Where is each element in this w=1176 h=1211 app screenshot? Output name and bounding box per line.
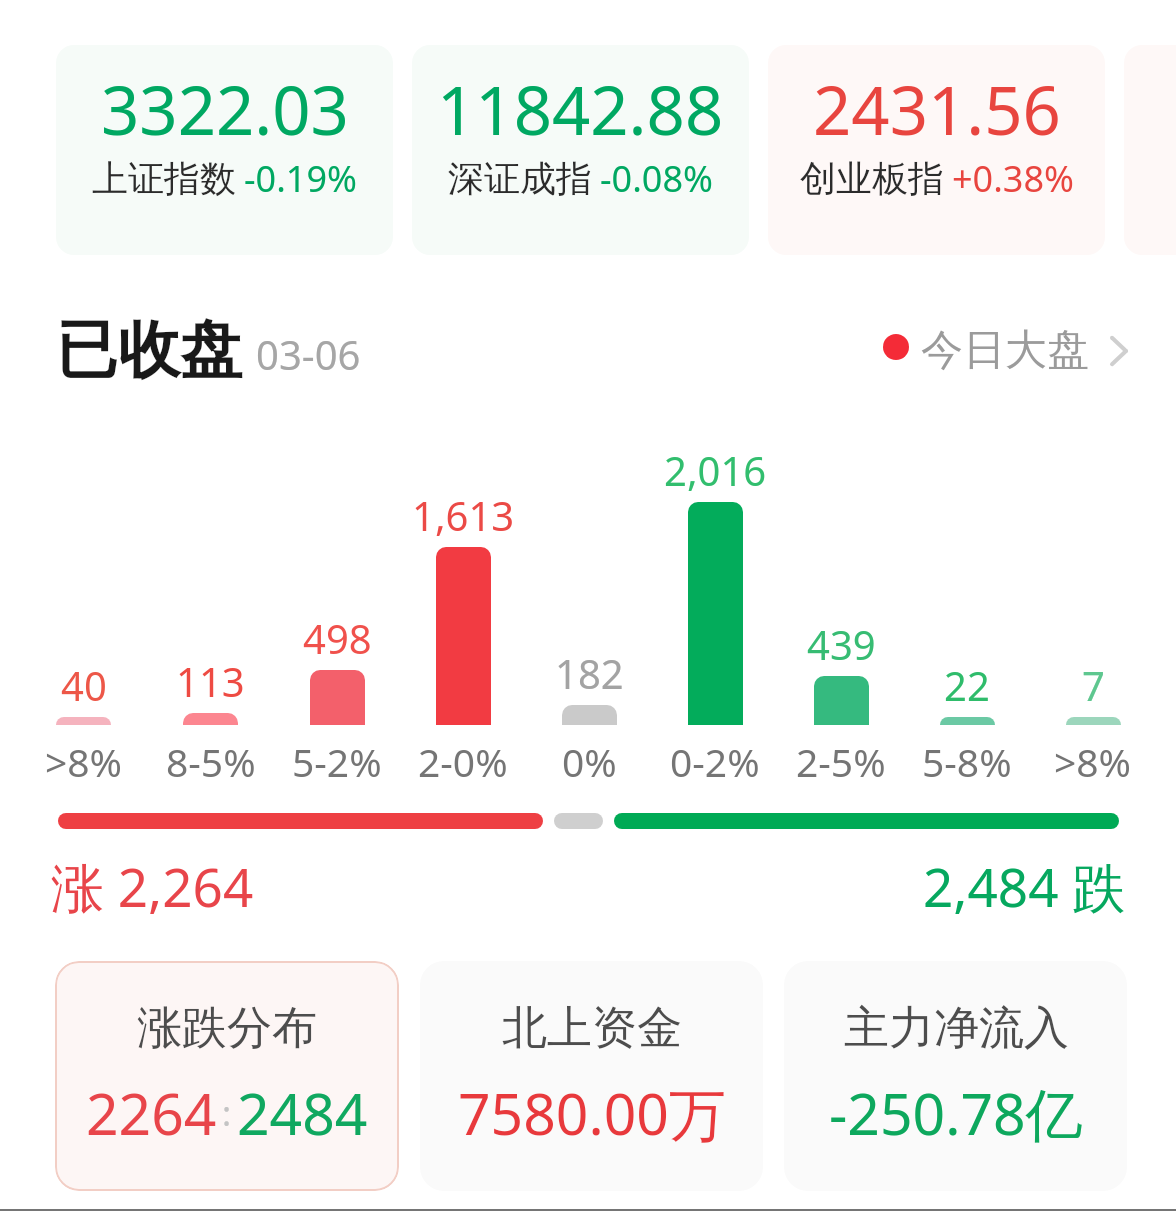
staticText: 40: [61, 658, 107, 712]
staticText: 创业板指: [800, 156, 944, 201]
staticText: :: [222, 1090, 232, 1136]
staticText: 8-5%: [166, 735, 256, 788]
button[interactable]: 3322.03: [56, 45, 393, 255]
button[interactable]: 今日大盘: [883, 324, 1129, 377]
staticText: +0.38%: [952, 154, 1074, 203]
button[interactable]: 主力净流入: [784, 961, 1127, 1191]
staticText: 2,484 跌: [923, 850, 1126, 922]
staticText: 2,016: [664, 443, 767, 497]
staticText: 498: [303, 611, 372, 665]
staticText: -0.19%: [244, 154, 357, 203]
staticText: 439: [807, 617, 876, 671]
button[interactable]: 北上资金: [420, 961, 763, 1191]
staticText: 2431.56: [813, 63, 1061, 154]
staticText: 182: [555, 646, 624, 700]
staticText: 113: [176, 654, 245, 708]
staticText: 今日大盘: [921, 324, 1089, 377]
staticText: 涨 2,264: [51, 850, 254, 922]
staticText: 2-5%: [796, 735, 886, 788]
staticText: 3322.03: [101, 63, 349, 154]
staticText: 北上资金: [502, 1000, 682, 1057]
staticText: 0-2%: [670, 735, 760, 788]
staticText: 已收盘: [56, 311, 242, 389]
staticText: 1,613: [412, 488, 515, 542]
staticText: >8%: [1054, 735, 1132, 788]
staticText: >8%: [45, 735, 123, 788]
staticText: 5-2%: [292, 735, 382, 788]
staticText: -250.78亿: [829, 1074, 1083, 1152]
staticText: 主力净流入: [844, 1000, 1069, 1057]
staticText: 涨跌分布: [137, 1000, 317, 1057]
staticText: 2484: [237, 1074, 368, 1152]
button[interactable]: 11842.88: [412, 45, 749, 255]
staticText: 5-8%: [922, 735, 1012, 788]
staticText: 深证成指: [448, 156, 592, 201]
button[interactable]: 涨跌分布: [55, 961, 399, 1191]
staticText: -0.08%: [600, 154, 713, 203]
staticText: 22: [944, 658, 990, 712]
staticText: 7580.00万: [458, 1074, 726, 1152]
staticText: 0%: [562, 735, 617, 788]
button[interactable]: 2431.56: [768, 45, 1105, 255]
staticText: 7: [1082, 658, 1105, 712]
staticText: 2264: [86, 1074, 217, 1152]
staticText: 03-06: [256, 327, 361, 381]
staticText: 11842.88: [437, 63, 724, 154]
staticText: 上证指数: [92, 156, 236, 201]
staticText: 2-0%: [418, 735, 508, 788]
